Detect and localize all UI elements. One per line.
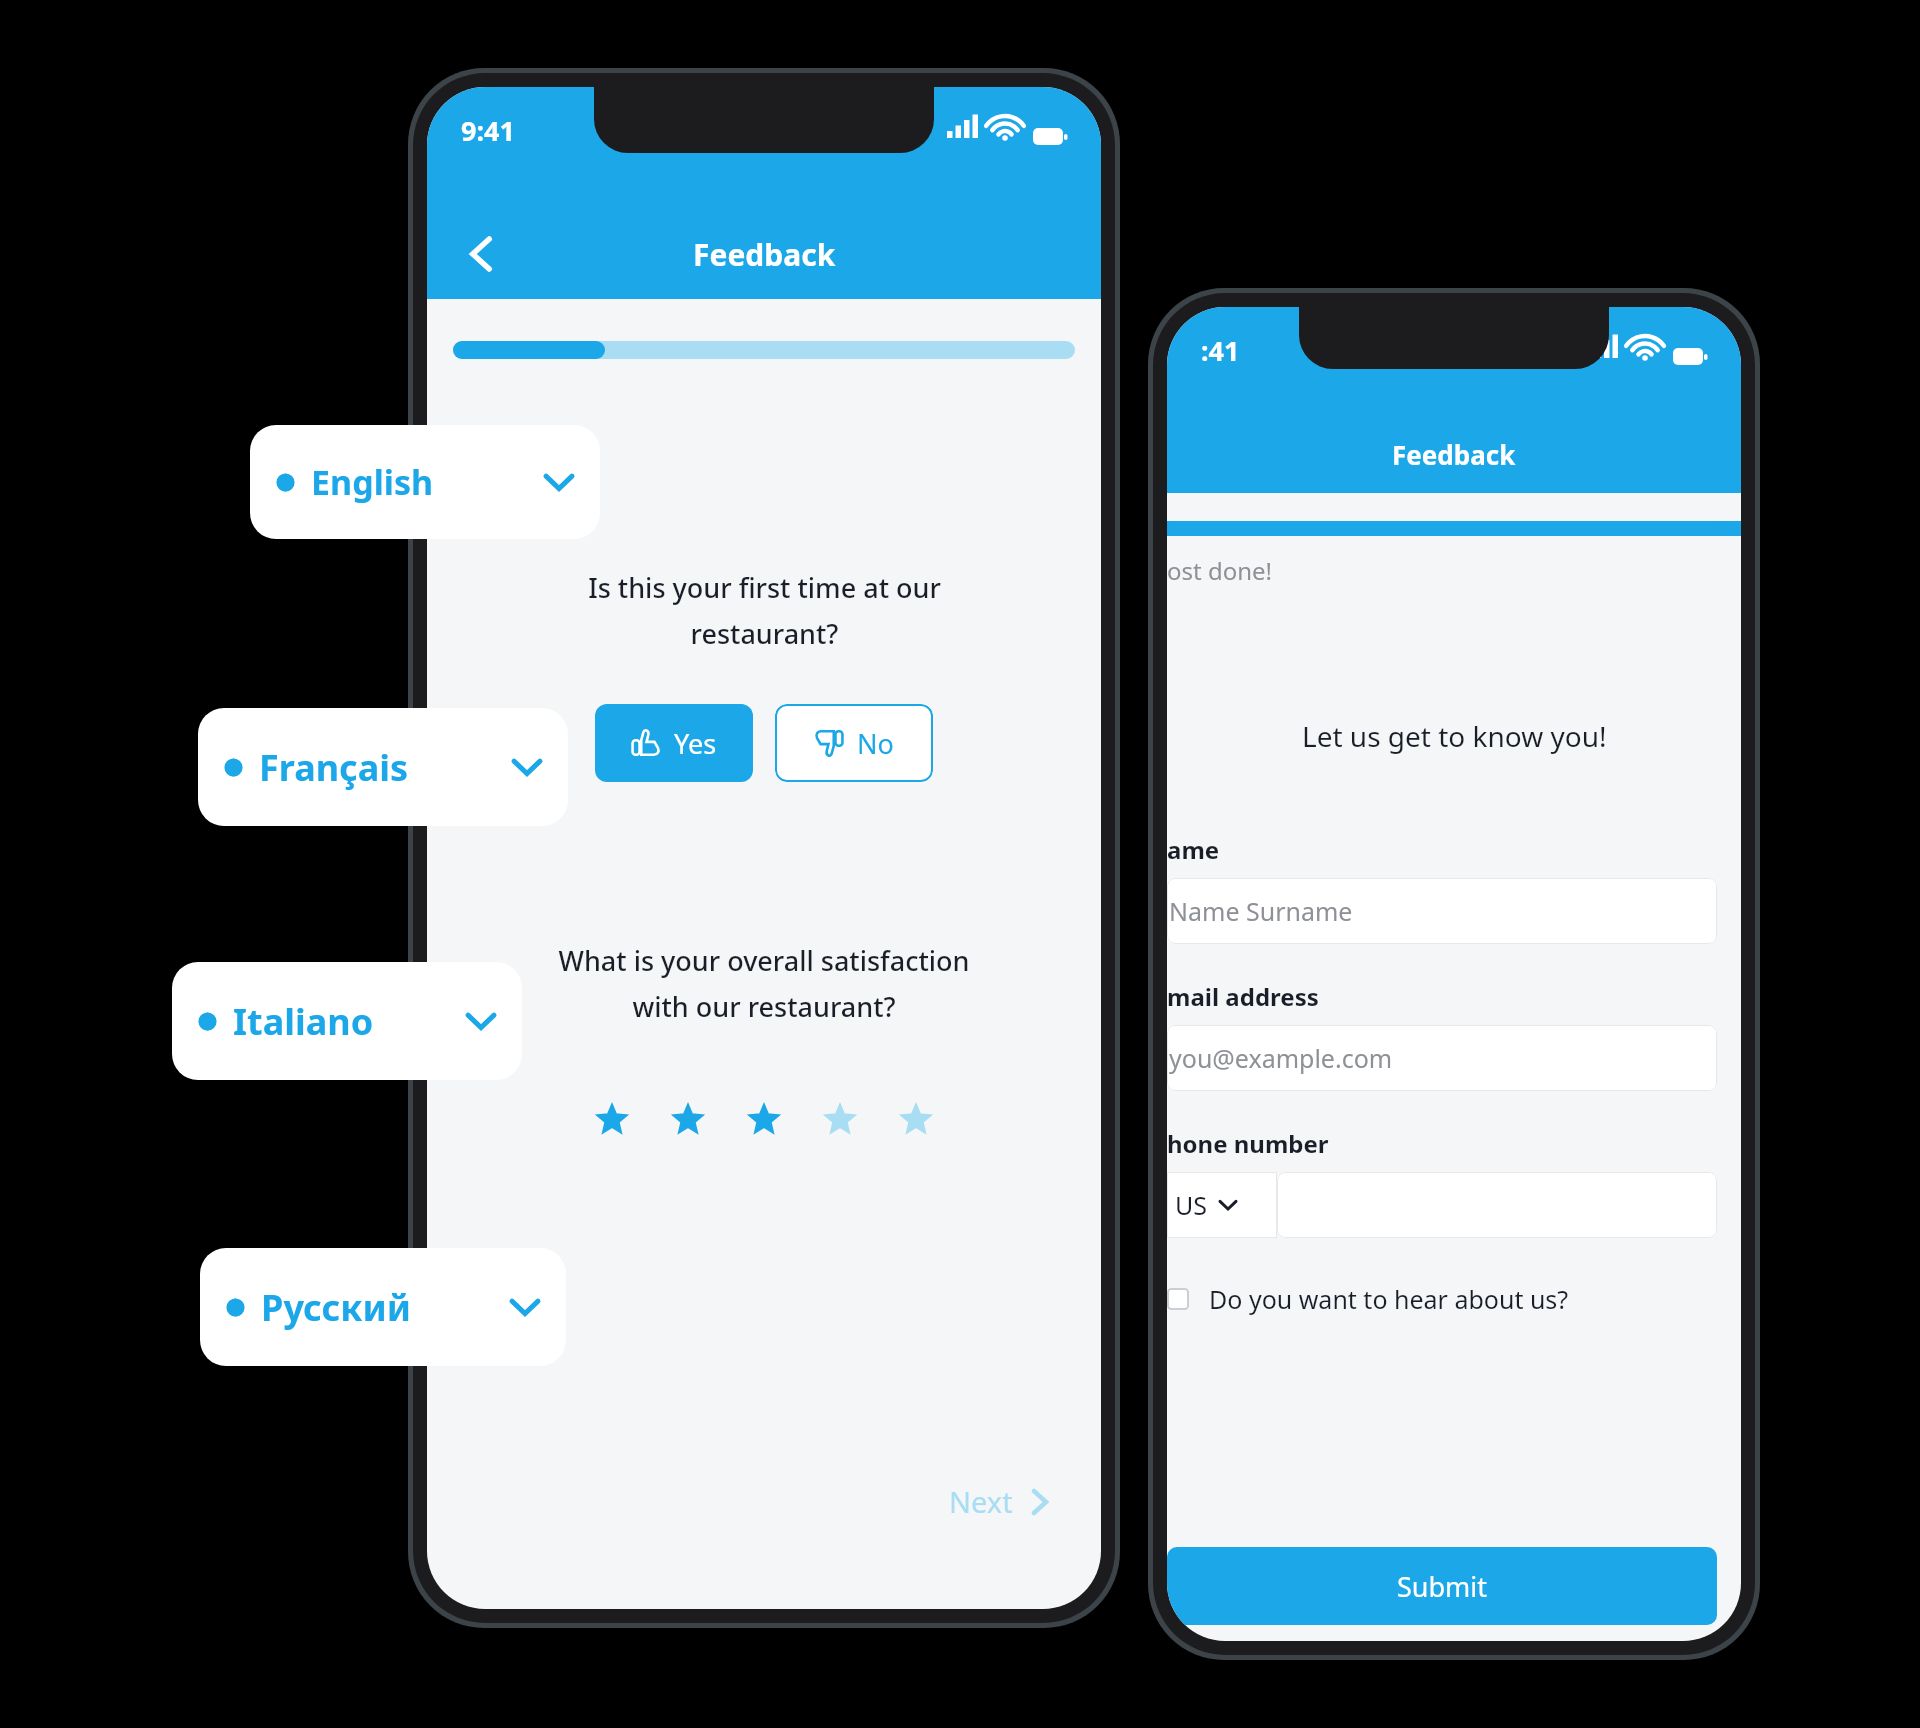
button[interactable]: you@example.com bbox=[1167, 1025, 1717, 1091]
button[interactable]: Next bbox=[941, 1474, 1061, 1529]
staticText: What is your overall satisfaction with o… bbox=[558, 942, 970, 1025]
button[interactable]: Русский bbox=[200, 1248, 566, 1366]
staticText: hone number bbox=[1167, 1127, 1329, 1160]
staticText: Let us get to know you! bbox=[1302, 717, 1607, 755]
button[interactable]: Français bbox=[198, 708, 568, 826]
staticText: 9:41 bbox=[461, 112, 515, 149]
staticText: ame bbox=[1167, 833, 1220, 866]
staticText: Next bbox=[949, 1482, 1013, 1521]
staticText: Русский bbox=[261, 1283, 411, 1332]
staticText: you@example.com bbox=[1169, 1041, 1393, 1075]
button[interactable] bbox=[878, 1081, 954, 1157]
staticText: US bbox=[1175, 1188, 1208, 1222]
staticText: Italiano bbox=[233, 997, 374, 1046]
button[interactable]: Yes bbox=[595, 704, 753, 782]
staticText: :41 bbox=[1201, 332, 1240, 369]
staticText: Submit bbox=[1397, 1568, 1488, 1605]
button[interactable] bbox=[1277, 1172, 1717, 1238]
button[interactable]: Italiano bbox=[172, 962, 522, 1080]
button[interactable]: English bbox=[250, 425, 600, 539]
button[interactable]: Submit bbox=[1167, 1547, 1717, 1625]
staticText: No bbox=[857, 725, 894, 762]
button[interactable] bbox=[726, 1081, 802, 1157]
button[interactable]: Back bbox=[449, 222, 513, 286]
button[interactable]: US bbox=[1167, 1172, 1277, 1238]
staticText: Yes bbox=[674, 725, 717, 762]
button[interactable]: Name Surname bbox=[1167, 878, 1717, 944]
staticText: Français bbox=[259, 743, 409, 792]
staticText: Name Surname bbox=[1169, 894, 1353, 928]
button[interactable] bbox=[650, 1081, 726, 1157]
button[interactable]: Do you want to hear about us? bbox=[1167, 1282, 1741, 1316]
button[interactable] bbox=[802, 1081, 878, 1157]
staticText: Feedback bbox=[1392, 437, 1516, 472]
staticText: Feedback bbox=[693, 234, 836, 275]
staticText: ost done! bbox=[1167, 554, 1273, 587]
staticText: mail address bbox=[1167, 980, 1319, 1013]
button[interactable]: No bbox=[775, 704, 933, 782]
button[interactable] bbox=[574, 1081, 650, 1157]
staticText: Is this your first time at our restauran… bbox=[588, 569, 941, 652]
staticText: English bbox=[311, 459, 434, 505]
staticText: Do you want to hear about us? bbox=[1209, 1282, 1569, 1316]
